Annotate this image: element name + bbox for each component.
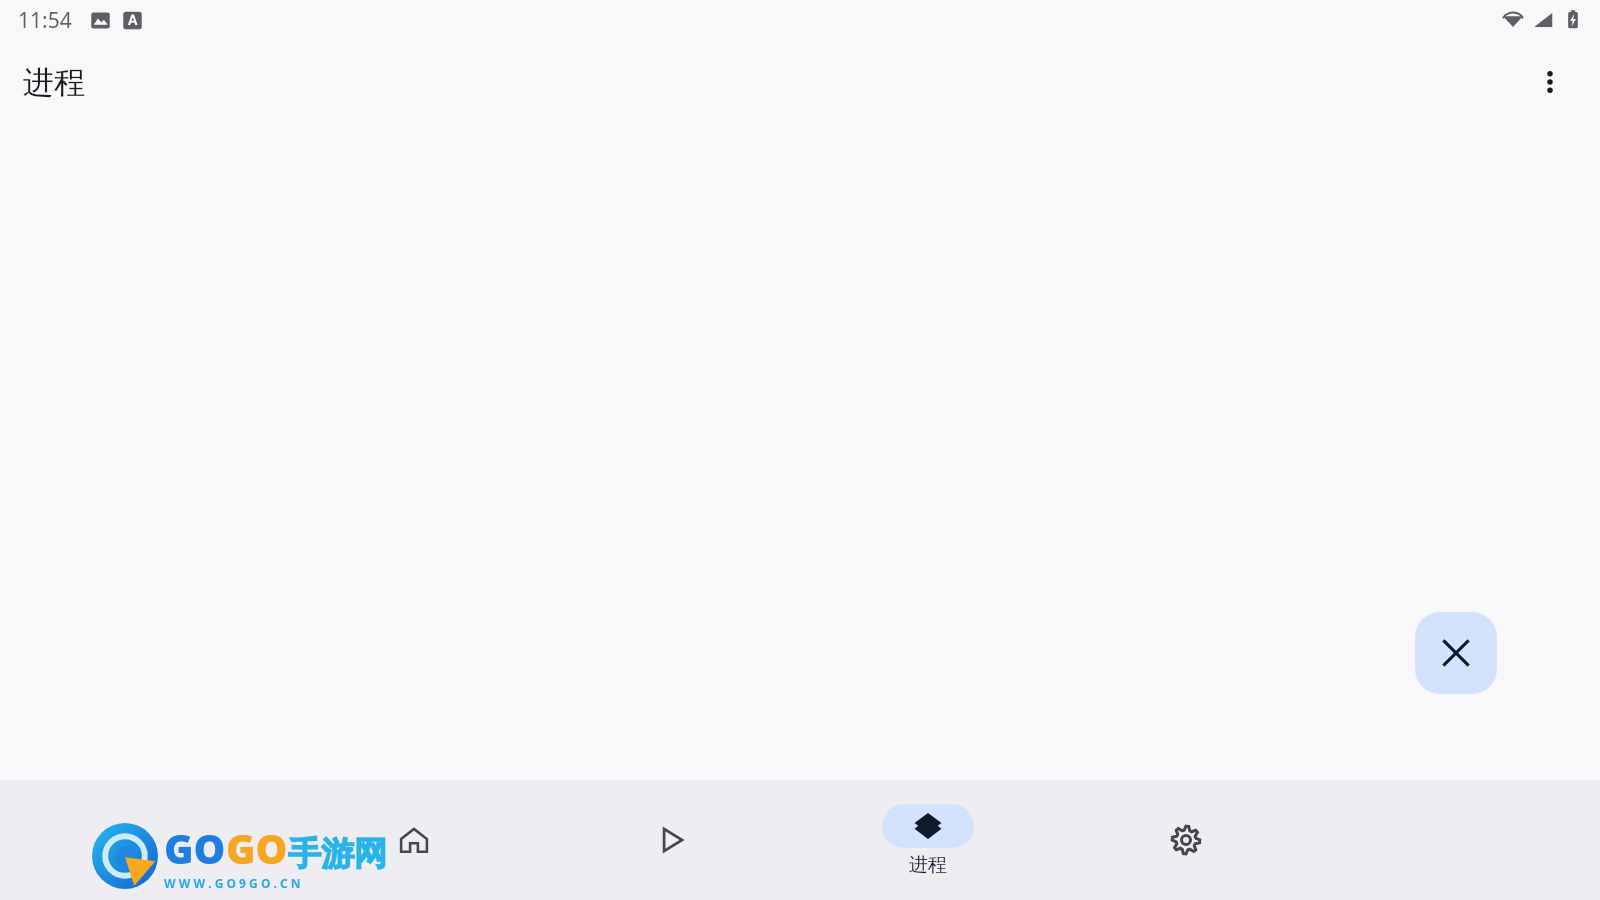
staticText: 进程 xyxy=(909,853,947,877)
button[interactable]: 进程 xyxy=(799,780,1057,900)
staticText: W W W . G O 9 G O . C N xyxy=(164,875,301,891)
button[interactable]: Play xyxy=(542,780,799,900)
staticText: GO xyxy=(226,821,288,875)
staticText: GO xyxy=(164,821,226,875)
button[interactable]: Home xyxy=(285,780,542,900)
button[interactable]: Settings xyxy=(1057,780,1315,900)
staticText: 手游网 xyxy=(288,833,387,875)
staticText: 11:54 xyxy=(18,6,72,35)
button[interactable]: More options xyxy=(1524,56,1576,108)
staticText: 进程 xyxy=(23,63,85,102)
button[interactable]: Close xyxy=(1415,612,1497,694)
